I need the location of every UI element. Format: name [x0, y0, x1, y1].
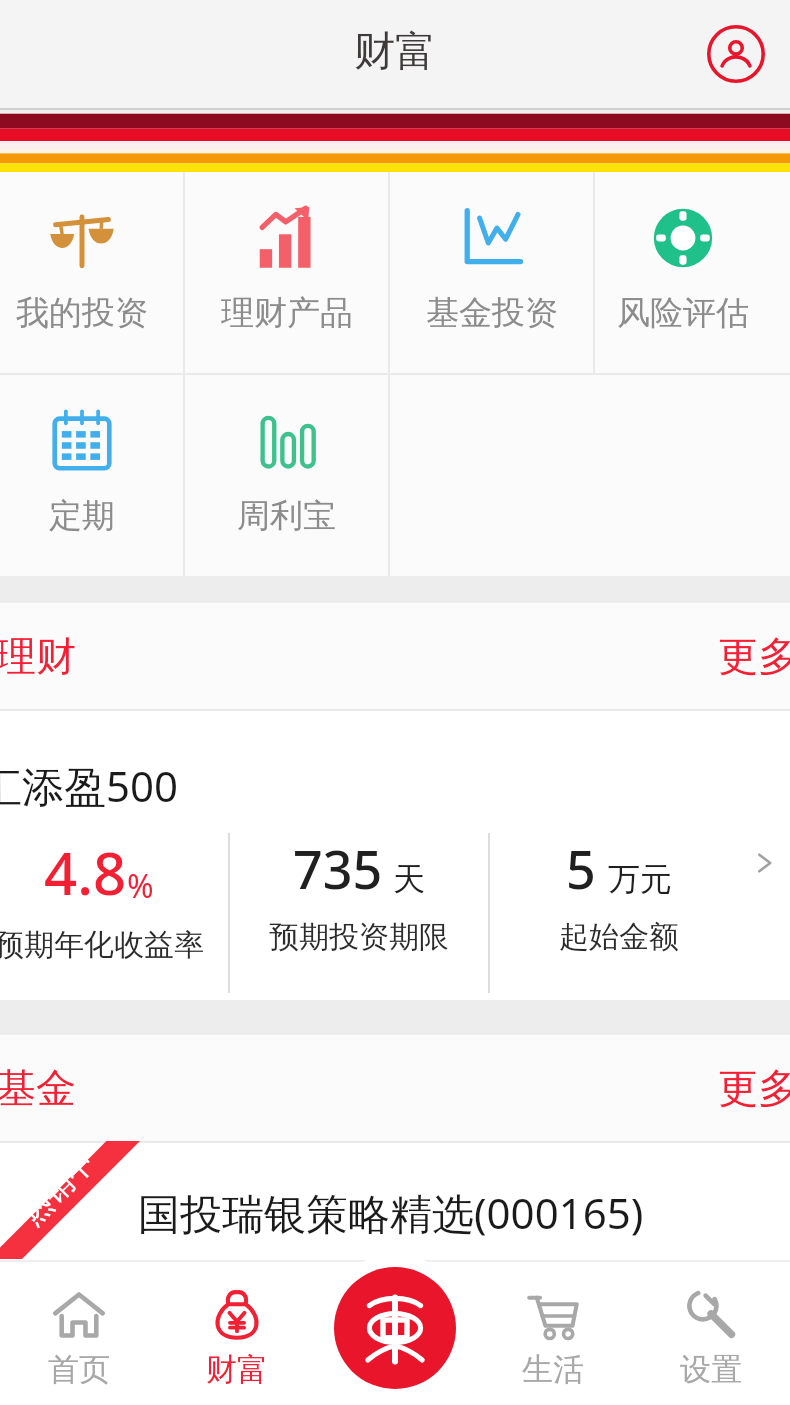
staticText: 天: [393, 859, 425, 899]
button[interactable]: 我的投资: [0, 172, 183, 373]
staticText: 设置: [680, 1350, 742, 1389]
staticText: 预期投资期限: [269, 918, 449, 956]
staticText: 财富: [354, 26, 436, 78]
button[interactable]: 周利宝: [185, 375, 388, 576]
button[interactable]: 更多: [714, 631, 790, 681]
staticText: 汇添盈500: [0, 757, 179, 814]
staticText: 预期年化收益率: [0, 926, 204, 964]
staticText: 风险评估: [617, 292, 749, 334]
staticText: 我的投资: [16, 292, 148, 334]
button[interactable]: 生活: [474, 1260, 632, 1405]
staticText: 国投瑞银策略精选(000165): [138, 1184, 644, 1241]
button[interactable]: 首页: [0, 1260, 158, 1405]
staticText: 理财: [0, 631, 76, 681]
button[interactable]: 基金投资: [390, 172, 593, 373]
button[interactable]: 定期: [0, 375, 183, 576]
staticText: 财富: [206, 1350, 268, 1389]
staticText: 热销中: [13, 1143, 103, 1233]
staticText: 更多: [718, 1063, 790, 1113]
staticText: 定期: [49, 495, 115, 537]
staticText: 生活: [522, 1350, 584, 1389]
staticText: 万元: [608, 859, 672, 899]
staticText: 基金投资: [426, 292, 558, 334]
staticText: 周利宝: [237, 495, 336, 537]
button[interactable]: 汇添盈500: [0, 709, 790, 1000]
button[interactable]: 设置: [632, 1260, 790, 1405]
button[interactable]: 财富: [158, 1260, 316, 1405]
staticText: 理财产品: [221, 292, 353, 334]
staticText: 735: [293, 833, 383, 904]
button[interactable]: Profile: [700, 18, 772, 90]
button[interactable]: 理财产品: [185, 172, 388, 373]
staticText: 5: [566, 833, 596, 904]
staticText: 首页: [48, 1350, 110, 1389]
staticText: %: [127, 864, 154, 908]
button[interactable]: 风险评估: [595, 172, 770, 373]
staticText: 更多: [718, 631, 790, 681]
staticText: 4.8: [44, 833, 127, 912]
button[interactable]: 国投瑞银策略精选(000165): [0, 1141, 790, 1259]
button[interactable]: 更多: [714, 1063, 790, 1113]
staticText: 起始金额: [559, 918, 679, 956]
button[interactable]: Bank of China: [334, 1267, 456, 1389]
staticText: 基金: [0, 1063, 76, 1113]
